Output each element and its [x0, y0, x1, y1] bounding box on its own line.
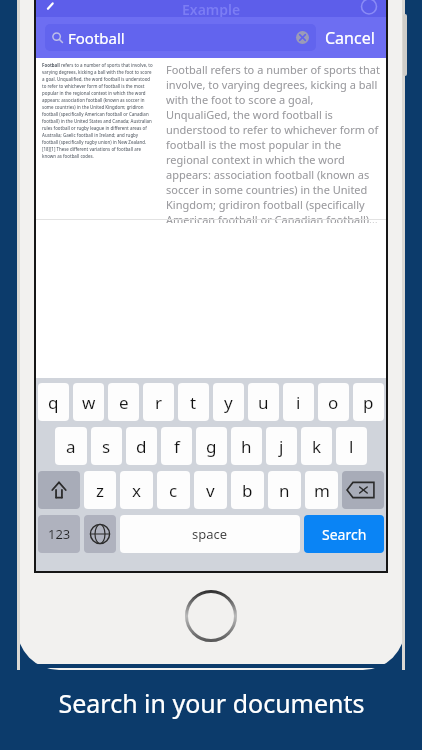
- button[interactable]: Shift: [38, 471, 80, 509]
- staticText: r: [155, 391, 163, 414]
- button[interactable]: m: [305, 471, 338, 509]
- button[interactable]: Home: [185, 590, 237, 642]
- staticText: Football refers to a number of sports th…: [42, 62, 154, 159]
- staticText: Football refers to a number of sports th…: [166, 62, 380, 223]
- staticText: f: [174, 435, 180, 458]
- staticText: y: [224, 391, 233, 414]
- button[interactable]: b: [231, 471, 264, 509]
- staticText: c: [169, 479, 178, 502]
- button[interactable]: i: [283, 383, 314, 421]
- button[interactable]: Search: [304, 515, 384, 553]
- button[interactable]: y: [213, 383, 244, 421]
- staticText: o: [328, 391, 339, 414]
- staticText: Search in your documents: [58, 686, 365, 720]
- button[interactable]: q: [38, 383, 69, 421]
- staticText: q: [48, 391, 59, 414]
- staticText: Search: [322, 525, 367, 544]
- button[interactable]: Football: [45, 24, 316, 51]
- button[interactable]: t: [178, 383, 209, 421]
- staticText: h: [241, 435, 252, 458]
- staticText: t: [190, 391, 197, 414]
- button[interactable]: Options: [360, 0, 378, 15]
- staticText: u: [258, 391, 269, 414]
- button[interactable]: Football refers to a number of sports th…: [36, 58, 386, 223]
- button[interactable]: s: [91, 427, 122, 465]
- staticText: x: [132, 479, 141, 502]
- staticText: l: [349, 435, 354, 458]
- button[interactable]: p: [353, 383, 384, 421]
- button[interactable]: e: [108, 383, 139, 421]
- button[interactable]: Change keyboard: [84, 515, 116, 553]
- button[interactable]: o: [318, 383, 349, 421]
- button[interactable]: j: [266, 427, 297, 465]
- staticText: b: [242, 479, 253, 502]
- staticText: 123: [48, 525, 71, 543]
- button[interactable]: z: [84, 471, 116, 509]
- button[interactable]: u: [248, 383, 279, 421]
- staticText: v: [206, 479, 215, 502]
- button[interactable]: r: [143, 383, 174, 421]
- staticText: d: [136, 435, 147, 458]
- button[interactable]: Backspace: [342, 471, 384, 509]
- staticText: k: [312, 435, 322, 458]
- button[interactable]: v: [194, 471, 227, 509]
- staticText: j: [279, 435, 284, 458]
- staticText: g: [206, 435, 217, 458]
- staticText: a: [66, 435, 76, 458]
- button[interactable]: c: [157, 471, 190, 509]
- button[interactable]: 123: [38, 515, 80, 553]
- staticText: i: [296, 391, 301, 414]
- staticText: s: [102, 435, 111, 458]
- button[interactable]: n: [268, 471, 301, 509]
- staticText: w: [82, 391, 96, 414]
- button[interactable]: l: [336, 427, 367, 465]
- button[interactable]: x: [120, 471, 153, 509]
- staticText: e: [119, 391, 129, 414]
- button[interactable]: w: [73, 383, 104, 421]
- button[interactable]: f: [161, 427, 192, 465]
- staticText: z: [96, 479, 104, 502]
- button[interactable]: d: [126, 427, 157, 465]
- staticText: space: [192, 525, 228, 543]
- button[interactable]: space: [120, 515, 300, 553]
- staticText: Example: [182, 0, 241, 17]
- button[interactable]: Cancel: [316, 27, 377, 49]
- staticText: p: [363, 391, 374, 414]
- staticText: m: [314, 479, 330, 502]
- button[interactable]: Clear text: [296, 31, 309, 44]
- staticText: n: [279, 479, 290, 502]
- button[interactable]: k: [301, 427, 332, 465]
- staticText: Cancel: [325, 27, 375, 49]
- staticText: Football: [68, 28, 125, 48]
- button[interactable]: g: [196, 427, 227, 465]
- button[interactable]: a: [55, 427, 87, 465]
- button[interactable]: h: [231, 427, 262, 465]
- button[interactable]: Back: [44, 2, 58, 16]
